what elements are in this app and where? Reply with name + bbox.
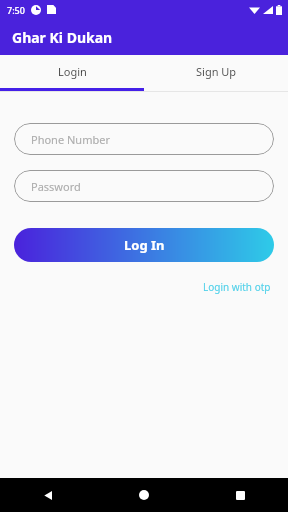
button[interactable]: Recent apps [192, 478, 288, 512]
button[interactable]: Home [96, 478, 192, 512]
staticText: Log In [124, 236, 165, 254]
staticText: Password [31, 179, 81, 194]
staticText: Phone Number [31, 132, 110, 147]
button[interactable]: Back [0, 478, 96, 512]
staticText: Login [58, 64, 87, 79]
staticText: Sign Up [196, 64, 237, 79]
staticText: 7:50 [7, 4, 25, 16]
staticText: Login with otp [203, 280, 271, 294]
button[interactable]: Login [0, 55, 144, 88]
button[interactable]: Password [14, 170, 274, 202]
staticText: Ghar Ki Dukan [12, 28, 113, 47]
button[interactable]: Log In [14, 228, 274, 262]
button[interactable]: Login with otp [200, 277, 274, 297]
button[interactable]: Sign Up [144, 55, 288, 88]
button[interactable]: Phone Number [14, 123, 274, 155]
